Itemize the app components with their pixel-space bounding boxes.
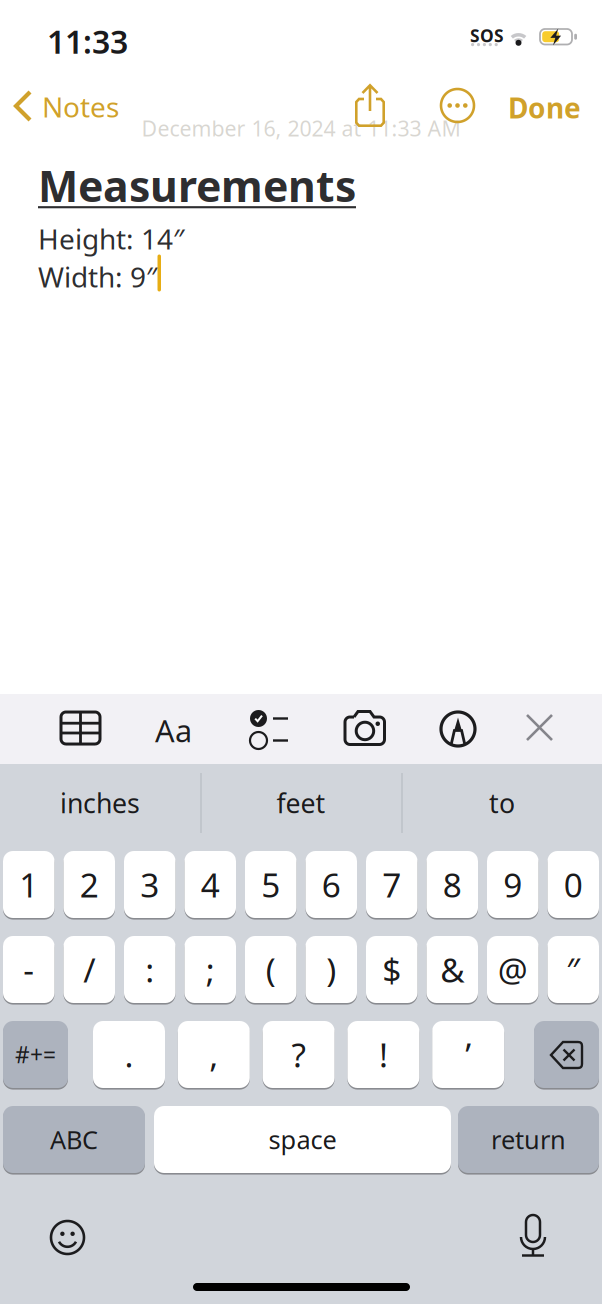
button[interactable]: ’ [432, 1021, 504, 1090]
button[interactable]: inches [0, 768, 200, 838]
staticText: 8 [443, 862, 462, 907]
button[interactable]: #+= [3, 1021, 68, 1090]
button[interactable]: . [93, 1021, 165, 1090]
button[interactable]: : [124, 936, 175, 1005]
staticText: ! [379, 1032, 388, 1077]
staticText: 7 [382, 862, 401, 907]
button[interactable]: ( [245, 936, 296, 1005]
button[interactable] [250, 710, 288, 749]
button[interactable] [61, 712, 100, 744]
staticText: 5 [261, 862, 280, 907]
button[interactable]: to [402, 768, 602, 838]
button[interactable]: Aa [155, 710, 192, 751]
staticText: ’ [465, 1032, 471, 1077]
staticText: 0 [564, 862, 583, 907]
staticText: : [145, 947, 154, 992]
staticText: to [489, 785, 515, 821]
staticText: Aa [155, 710, 192, 751]
staticText: 11:33 [47, 20, 128, 62]
staticText: Notes [42, 88, 119, 125]
button[interactable]: 4 [184, 851, 236, 920]
button[interactable]: 9 [487, 851, 538, 920]
button[interactable]: ABC [3, 1106, 145, 1175]
staticText: SOS [470, 24, 504, 47]
button[interactable]: ″ [547, 936, 599, 1005]
staticText: ? [292, 1032, 306, 1077]
staticText: - [23, 947, 34, 992]
staticText: #+= [15, 1039, 56, 1069]
button[interactable]: & [426, 936, 478, 1005]
staticText: return [491, 1123, 566, 1156]
staticText: inches [60, 785, 140, 821]
button[interactable]: space [154, 1106, 451, 1175]
staticText: ( [266, 947, 276, 992]
button[interactable] [519, 1215, 547, 1256]
button[interactable]: ! [347, 1021, 419, 1090]
staticText: December 16, 2024 at 11:33 AM [141, 114, 460, 142]
button[interactable]: ) [305, 936, 357, 1005]
staticText: Done [508, 89, 581, 126]
button[interactable]: Notes [14, 90, 134, 126]
staticText: 2 [80, 862, 99, 907]
button[interactable]: 3 [124, 851, 175, 920]
button[interactable] [441, 712, 475, 746]
staticText: ABC [50, 1123, 98, 1156]
button[interactable]: 5 [245, 851, 296, 920]
button[interactable]: 1 [3, 851, 54, 920]
button[interactable]: ? [263, 1021, 335, 1090]
button[interactable]: 2 [63, 851, 115, 920]
button[interactable]: return [458, 1106, 599, 1175]
button[interactable]: 7 [366, 851, 417, 920]
staticText: Measurements [38, 157, 356, 214]
staticText: 9 [503, 862, 522, 907]
button[interactable]: 6 [305, 851, 357, 920]
staticText: 1 [19, 862, 38, 907]
staticText: $ [382, 947, 401, 992]
button[interactable] [441, 89, 474, 122]
button[interactable]: ; [184, 936, 236, 1005]
button[interactable] [51, 1221, 84, 1254]
staticText: ) [326, 947, 336, 992]
button[interactable]: 0 [547, 851, 599, 920]
button[interactable] [527, 715, 552, 740]
staticText: ; [206, 947, 215, 992]
button[interactable]: feet [201, 768, 401, 838]
staticText: feet [276, 785, 325, 821]
staticText: Height: 14″ [38, 220, 184, 257]
button[interactable] [534, 1021, 599, 1090]
staticText: Width: 9″ [38, 258, 157, 295]
staticText: ″ [566, 947, 580, 992]
button[interactable]: 8 [426, 851, 478, 920]
staticText: & [440, 947, 464, 992]
button[interactable]: , [178, 1021, 250, 1090]
staticText: , [209, 1032, 218, 1077]
button[interactable]: Done [508, 89, 581, 126]
staticText: @ [498, 947, 528, 992]
staticText: 3 [140, 862, 159, 907]
button[interactable] [345, 711, 385, 745]
button[interactable]: @ [487, 936, 538, 1005]
button[interactable]: $ [366, 936, 417, 1005]
staticText: 6 [322, 862, 341, 907]
button[interactable]: - [3, 936, 54, 1005]
button[interactable] [355, 84, 385, 127]
button[interactable]: / [63, 936, 115, 1005]
staticText: . [124, 1032, 133, 1077]
staticText: / [83, 947, 95, 992]
staticText: 4 [201, 862, 220, 907]
staticText: space [268, 1123, 336, 1156]
